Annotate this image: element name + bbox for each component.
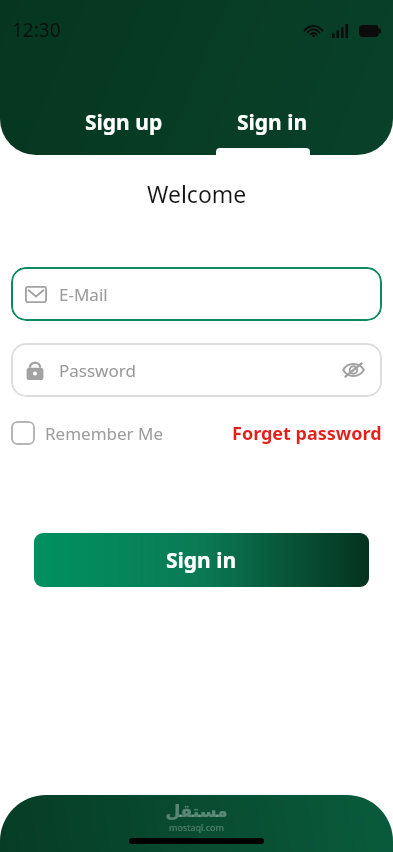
staticText: Password — [59, 359, 338, 382]
staticText: Sign in — [237, 108, 308, 137]
staticText: mostaql.com — [169, 821, 224, 833]
button[interactable]: Forget password — [232, 421, 382, 446]
button[interactable]: E-Mail — [11, 267, 382, 321]
button[interactable]: Remember Me — [11, 421, 164, 445]
staticText: Welcome — [147, 178, 247, 209]
button[interactable]: Sign in — [34, 533, 369, 587]
staticText: 12:30 — [12, 17, 61, 43]
staticText: Sign in — [166, 546, 237, 575]
button[interactable]: Password — [11, 343, 382, 397]
staticText: Sign up — [85, 108, 163, 137]
button[interactable]: Show password — [338, 355, 368, 385]
button[interactable]: Sign up — [65, 102, 183, 143]
staticText: مستقل — [165, 801, 228, 821]
staticText: Remember Me — [45, 422, 164, 445]
staticText: E-Mail — [59, 283, 108, 306]
button[interactable]: Sign in — [217, 102, 328, 143]
staticText: Forget password — [232, 421, 382, 446]
